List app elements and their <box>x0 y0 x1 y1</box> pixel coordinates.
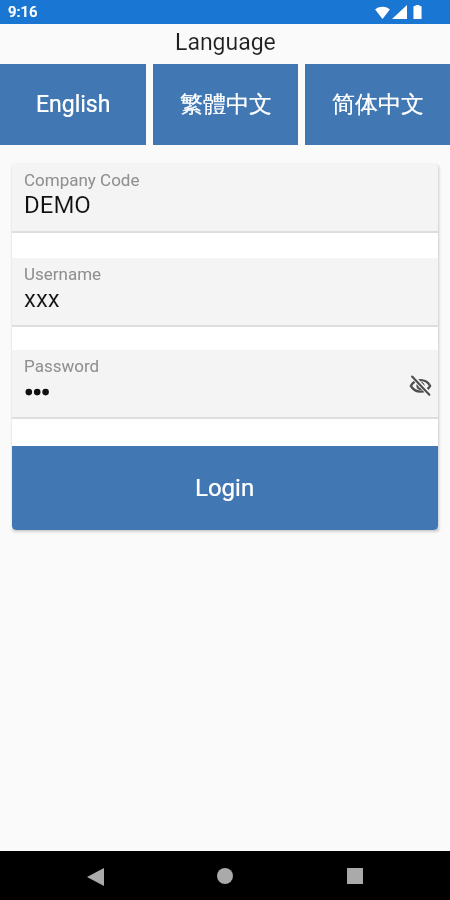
staticText: Login <box>195 474 255 502</box>
button[interactable]: Home <box>201 852 249 900</box>
button[interactable]: 繁體中文 <box>153 64 298 145</box>
button[interactable]: Login <box>12 446 438 530</box>
staticText: Username <box>24 264 102 284</box>
staticText: xxx <box>24 285 60 313</box>
button[interactable]: Recent apps <box>331 852 379 900</box>
button[interactable]: English <box>0 64 146 145</box>
staticText: 简体中文 <box>332 90 424 119</box>
staticText: English <box>36 91 111 118</box>
button[interactable]: Toggle password visibility <box>405 370 435 400</box>
staticText: 繁體中文 <box>180 90 272 119</box>
button[interactable]: 简体中文 <box>305 64 450 145</box>
button[interactable]: Company Code <box>12 164 438 233</box>
staticText: 9:16 <box>8 3 38 21</box>
staticText: Password <box>24 356 100 376</box>
staticText: DEMO <box>24 191 91 219</box>
staticText: Language <box>175 29 276 56</box>
button[interactable]: Back <box>71 852 119 900</box>
staticText: Company Code <box>24 170 140 190</box>
button[interactable]: Password <box>12 350 438 419</box>
button[interactable]: Username <box>12 258 438 327</box>
